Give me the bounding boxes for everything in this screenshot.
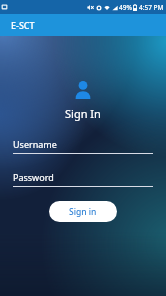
staticText: Sign in (69, 206, 97, 218)
staticText: E-SCT (11, 19, 35, 31)
staticText: Password (13, 171, 54, 183)
staticText: 4:57 PM (139, 3, 164, 12)
staticText: Username (13, 138, 57, 150)
other: Account (73, 80, 93, 100)
button[interactable]: Password (13, 171, 153, 187)
staticText: 49% (119, 3, 132, 12)
button[interactable]: Sign in (49, 201, 117, 222)
button[interactable]: Username (13, 138, 153, 154)
staticText: Sign In (65, 106, 101, 121)
